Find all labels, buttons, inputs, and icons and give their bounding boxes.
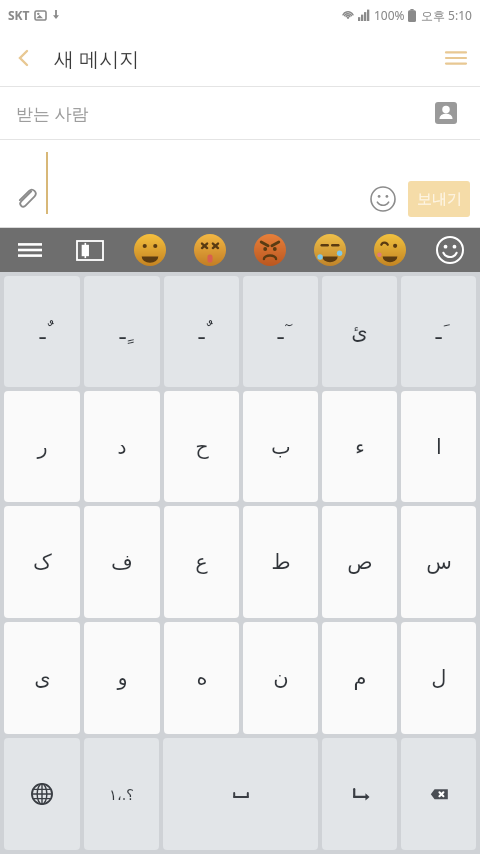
button[interactable]: ک	[4, 506, 80, 618]
button[interactable]: Money	[60, 228, 120, 272]
staticText: ـٍ	[119, 320, 126, 344]
button[interactable]: ا	[401, 391, 476, 502]
staticText: ل	[431, 666, 447, 690]
button[interactable]: Menu	[432, 34, 480, 82]
button[interactable]: ل	[401, 622, 476, 734]
button[interactable]: Attach	[6, 178, 46, 218]
staticText: د	[117, 435, 127, 459]
button[interactable]: Emoji 1	[180, 228, 240, 272]
staticText: ح	[195, 435, 209, 459]
staticText: ـٌ	[39, 320, 46, 344]
button[interactable]: ـٌ	[4, 276, 80, 387]
button[interactable]: ـٍ	[84, 276, 160, 387]
button[interactable]: ـٓ	[243, 276, 318, 387]
button[interactable]: ن	[243, 622, 318, 734]
button[interactable]: Emoji	[362, 178, 404, 220]
button[interactable]: د	[84, 391, 160, 502]
staticText: 받는 사람	[16, 102, 89, 125]
button[interactable]: ـٌ	[164, 276, 239, 387]
staticText: 오후 5:10	[421, 7, 472, 23]
button[interactable]: Keyboard options	[0, 228, 60, 272]
button[interactable]: ر	[4, 391, 80, 502]
staticText: ص	[347, 550, 373, 574]
button[interactable]: و	[84, 622, 160, 734]
button[interactable]: Language	[4, 738, 80, 850]
staticText: ـَ	[435, 320, 442, 344]
staticText: ـٌ	[198, 320, 205, 344]
staticText: ن	[273, 666, 289, 690]
button[interactable]: Emoji 0	[120, 228, 180, 272]
button[interactable]: Emoji 3	[300, 228, 360, 272]
staticText: 보내기	[417, 190, 462, 209]
staticText: ا	[436, 435, 442, 459]
staticText: ـٓ	[277, 320, 284, 344]
button[interactable]: 보내기	[408, 181, 470, 217]
staticText: م	[353, 666, 367, 690]
button[interactable]: ط	[243, 506, 318, 618]
staticText: ؟.،١	[109, 784, 134, 804]
button[interactable]: ب	[243, 391, 318, 502]
button[interactable]: Back	[0, 34, 48, 82]
staticText: 새 메시지	[54, 45, 140, 72]
staticText: ی	[34, 666, 51, 690]
staticText: و	[117, 666, 128, 690]
button[interactable]: ؟.،١	[84, 738, 159, 850]
button[interactable]: م	[322, 622, 397, 734]
staticText: ف	[111, 550, 133, 574]
staticText: 100%	[374, 7, 405, 23]
button[interactable]: Enter	[322, 738, 397, 850]
staticText: ط	[271, 550, 291, 574]
staticText: ک	[33, 550, 52, 574]
button[interactable]: ء	[322, 391, 397, 502]
staticText: ر	[37, 435, 48, 459]
staticText: ع	[195, 550, 208, 574]
button[interactable]: ـَ	[401, 276, 476, 387]
button[interactable]: Emoji 4	[360, 228, 420, 272]
button[interactable]: ح	[164, 391, 239, 502]
staticText: ه	[196, 666, 208, 690]
button[interactable]: ی	[4, 622, 80, 734]
button[interactable]: ئ	[322, 276, 397, 387]
button[interactable]: س	[401, 506, 476, 618]
staticText: ئ	[351, 320, 368, 344]
staticText: س	[426, 550, 452, 574]
button[interactable]: ع	[164, 506, 239, 618]
button[interactable]: Space	[163, 738, 318, 850]
staticText: SKT	[8, 7, 30, 23]
staticText: ء	[355, 435, 365, 459]
button[interactable]: ص	[322, 506, 397, 618]
staticText: ب	[271, 435, 291, 459]
button[interactable]: ه	[164, 622, 239, 734]
button[interactable]: Add recipient	[426, 93, 466, 133]
button[interactable]: Backspace	[401, 738, 476, 850]
button[interactable]: 받는 사람	[0, 87, 480, 139]
button[interactable]: ف	[84, 506, 160, 618]
button[interactable]: Emoji 2	[240, 228, 300, 272]
button[interactable]: Emoji panel	[420, 228, 480, 272]
